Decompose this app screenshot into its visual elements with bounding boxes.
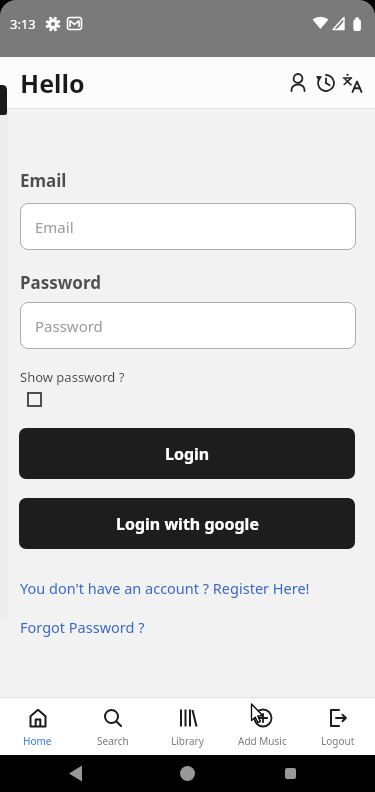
staticText: Password	[20, 271, 101, 294]
button[interactable]	[311, 69, 338, 96]
button[interactable]	[27, 392, 42, 407]
staticText: Search	[97, 734, 129, 748]
staticText: Login with google	[116, 513, 259, 535]
button[interactable]: Login	[19, 428, 355, 479]
staticText: Email	[20, 169, 67, 192]
button[interactable]: Search	[75, 698, 150, 755]
button[interactable]	[284, 69, 311, 96]
button[interactable]: Password	[20, 302, 356, 349]
button[interactable]: Library	[150, 698, 225, 755]
button[interactable]	[338, 69, 365, 96]
button[interactable]: Home	[0, 698, 75, 755]
staticText: Hello	[20, 66, 85, 100]
staticText: Login	[165, 443, 210, 465]
staticText: Password	[35, 316, 103, 336]
button[interactable]: Add Music	[225, 698, 300, 755]
button[interactable]: Login with google	[19, 498, 355, 549]
button[interactable]: Logout	[300, 698, 375, 755]
button[interactable]: Forgot Password ?	[20, 617, 145, 637]
button[interactable]: Email	[20, 203, 356, 250]
button[interactable]: You don't have an account ? Register Her…	[20, 578, 310, 598]
staticText: 3:13	[10, 15, 36, 33]
staticText: Library	[171, 734, 204, 748]
staticText: Home	[23, 734, 52, 748]
staticText: Logout	[321, 734, 355, 748]
staticText: Add Music	[238, 734, 287, 748]
staticText: Email	[35, 217, 74, 237]
staticText: Show password ?	[20, 368, 125, 386]
